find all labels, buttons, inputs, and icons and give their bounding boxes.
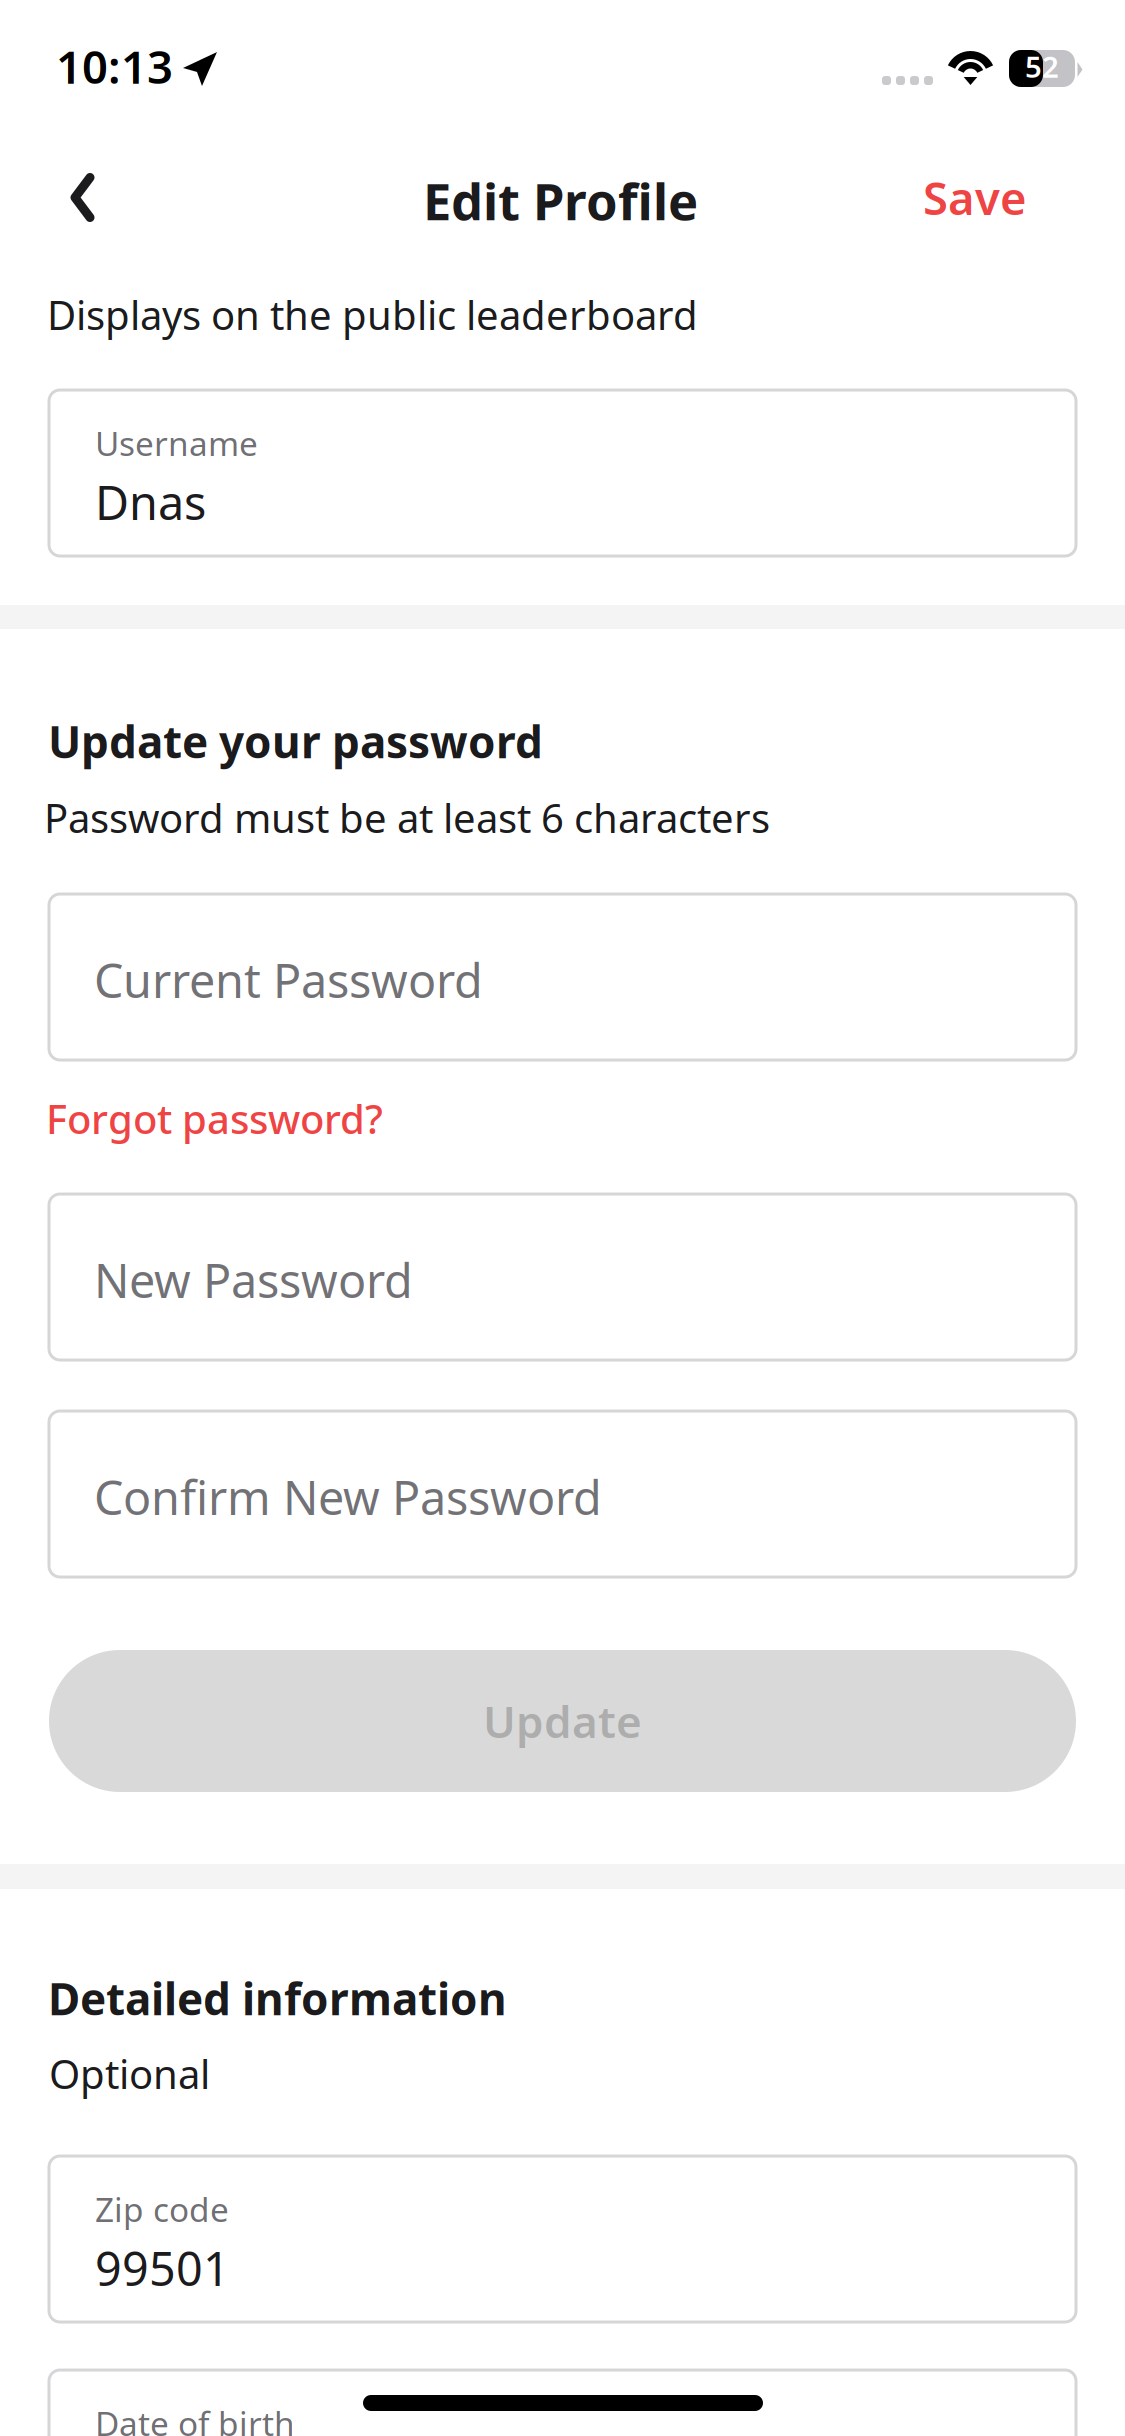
staticText: Update your password bbox=[48, 712, 543, 770]
staticText: 10:13 bbox=[56, 36, 173, 96]
button[interactable]: New Password bbox=[49, 1194, 1076, 1360]
button[interactable]: Zip code bbox=[49, 2156, 1076, 2322]
staticText: Date of birth bbox=[95, 2401, 295, 2436]
button[interactable]: Forgot password? bbox=[46, 1084, 407, 1153]
staticText: Save bbox=[923, 167, 1027, 228]
button[interactable]: Back bbox=[24, 145, 125, 250]
button[interactable]: Date of birth bbox=[49, 2370, 1076, 2436]
staticText: Current Password bbox=[94, 949, 483, 1011]
staticText: Update bbox=[483, 1692, 642, 1750]
button[interactable]: Username bbox=[49, 390, 1076, 556]
staticText: 99501 bbox=[95, 2237, 230, 2299]
staticText: Confirm New Password bbox=[94, 1466, 602, 1528]
button[interactable]: Confirm New Password bbox=[49, 1411, 1076, 1577]
staticText: New Password bbox=[94, 1249, 413, 1311]
button[interactable]: Current Password bbox=[49, 894, 1076, 1060]
staticText: Zip code bbox=[95, 2187, 229, 2231]
staticText: Displays on the public leaderboard bbox=[47, 288, 698, 341]
button[interactable]: Update bbox=[49, 1650, 1076, 1792]
staticText: Detailed information bbox=[48, 1969, 507, 2027]
button[interactable]: Save bbox=[893, 145, 1057, 250]
staticText: Username bbox=[95, 421, 258, 465]
staticText: Dnas bbox=[95, 471, 206, 533]
staticText: Optional bbox=[49, 2047, 210, 2100]
staticText: Edit Profile bbox=[423, 167, 698, 234]
staticText: Password must be at least 6 characters bbox=[44, 791, 770, 844]
staticText: Forgot password? bbox=[46, 1092, 383, 1145]
staticText: 52 bbox=[1025, 47, 1059, 86]
